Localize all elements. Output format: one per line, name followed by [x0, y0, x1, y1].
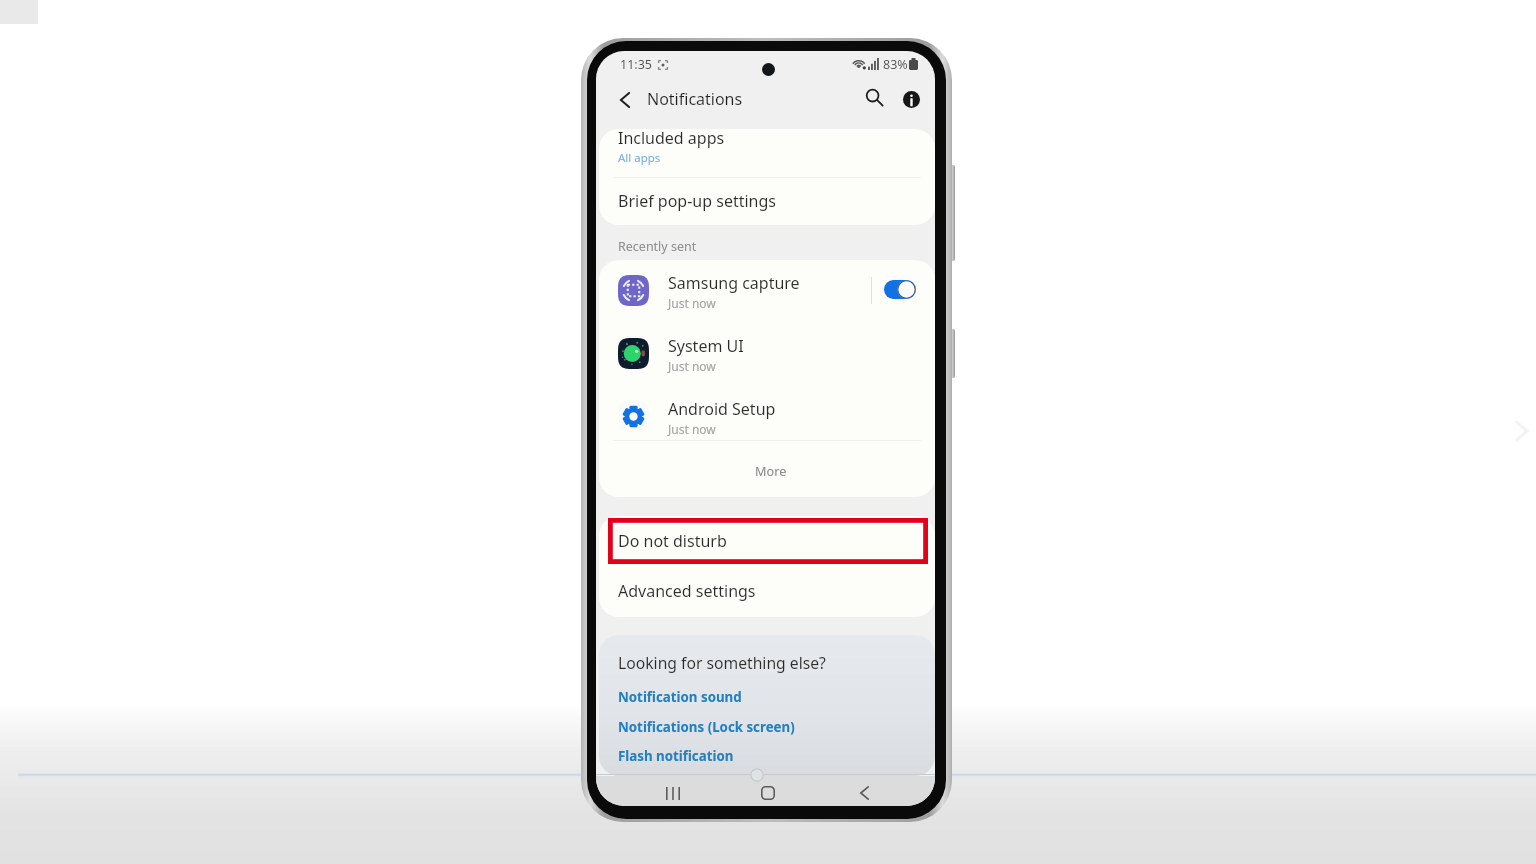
staticText: Notifications (Lock screen)	[618, 718, 795, 736]
staticText: Just now	[668, 421, 716, 437]
button[interactable]: Recent apps	[657, 777, 689, 806]
staticText: Recently sent	[618, 238, 697, 255]
button[interactable]	[613, 441, 921, 495]
button[interactable]	[600, 323, 935, 385]
button[interactable]	[600, 566, 935, 617]
button[interactable]: Back	[848, 777, 880, 806]
button[interactable]: Navigate up	[608, 83, 642, 117]
button[interactable]	[614, 688, 754, 710]
staticText: Looking for something else?	[618, 652, 826, 673]
staticText: 83%	[883, 56, 908, 73]
button[interactable]: About notifications	[895, 83, 927, 115]
staticText: Notification sound	[618, 688, 742, 706]
button[interactable]	[599, 129, 935, 225]
staticText: System UI	[668, 335, 744, 357]
button[interactable]	[600, 516, 935, 566]
staticText: All apps	[618, 150, 661, 166]
staticText: Samsung capture	[668, 272, 800, 294]
button[interactable]	[614, 718, 810, 740]
button[interactable]: Toggle Samsung capture notifications	[884, 280, 916, 299]
staticText: Brief pop-up settings	[618, 190, 776, 212]
button[interactable]	[614, 747, 754, 769]
staticText: Flash notification	[618, 747, 734, 765]
staticText: Advanced settings	[618, 580, 756, 602]
staticText: Just now	[668, 295, 716, 311]
button[interactable]: Search	[858, 81, 890, 113]
staticText: Included apps	[618, 127, 725, 149]
button[interactable]	[600, 260, 935, 322]
staticText: Just now	[668, 358, 716, 374]
staticText: Notifications	[647, 88, 743, 110]
staticText: More	[755, 462, 787, 479]
staticText: Android Setup	[668, 398, 776, 420]
button[interactable]: Home	[752, 777, 784, 806]
button[interactable]	[600, 386, 935, 448]
staticText: Do not disturb	[618, 530, 727, 552]
staticText: 11:35	[620, 56, 652, 73]
